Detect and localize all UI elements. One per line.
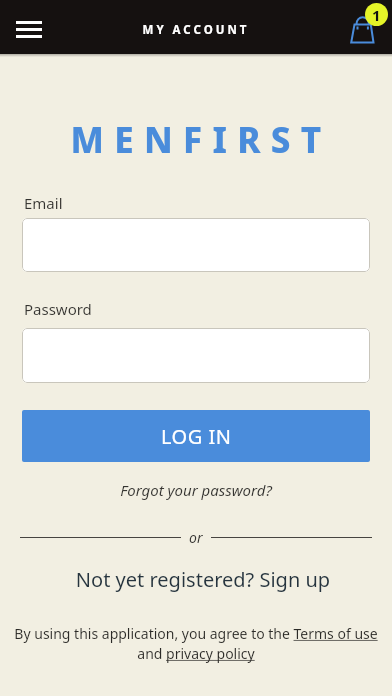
staticText: LOG IN (161, 423, 232, 450)
staticText: Password (24, 299, 92, 319)
button[interactable]: 1 (336, 0, 392, 54)
button[interactable] (22, 218, 370, 272)
staticText: MY ACCOUNT (0, 22, 392, 38)
button[interactable]: LOG IN (22, 410, 370, 462)
staticText: Email (24, 193, 63, 213)
button[interactable] (22, 328, 370, 383)
staticText: or (189, 528, 203, 547)
button[interactable]: Forgot your password? (0, 480, 392, 500)
button[interactable]: and privacy policy (0, 644, 392, 663)
button[interactable]: By using this application, you agree to … (0, 624, 392, 643)
button[interactable] (16, 21, 42, 38)
button[interactable]: Not yet registered? Sign up (7, 566, 392, 593)
staticText: 1 (372, 5, 381, 25)
staticText: MENFIRST (5, 116, 392, 164)
